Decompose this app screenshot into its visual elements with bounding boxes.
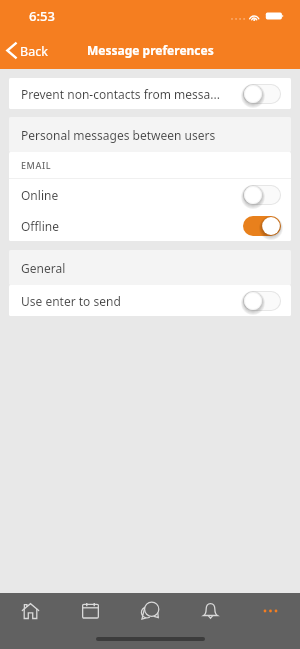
staticText: Online xyxy=(21,187,243,203)
button[interactable]: Online xyxy=(9,179,291,210)
button[interactable]: Home xyxy=(0,593,60,628)
button[interactable]: Use enter to send xyxy=(9,285,291,316)
button[interactable] xyxy=(243,216,281,236)
staticText: Offline xyxy=(21,218,243,234)
staticText: EMAIL xyxy=(21,159,52,171)
staticText: Personal messages between users xyxy=(21,127,216,143)
button[interactable] xyxy=(243,291,281,311)
staticText: Message preferences xyxy=(87,42,214,58)
button[interactable]: Notifications xyxy=(180,593,240,628)
button[interactable] xyxy=(243,84,281,104)
button[interactable]: Messages xyxy=(120,593,180,628)
button[interactable] xyxy=(243,185,281,205)
button[interactable]: Prevent non-contacts from messa... xyxy=(9,78,291,109)
button[interactable]: More options xyxy=(240,593,300,628)
staticText: Prevent non-contacts from messa... xyxy=(21,86,243,102)
staticText: Use enter to send xyxy=(21,293,243,309)
button[interactable]: Calendar xyxy=(60,593,120,628)
staticText: 6:53 xyxy=(29,7,55,25)
staticText: General xyxy=(21,260,66,276)
staticText: Back xyxy=(20,43,48,60)
button[interactable]: Back xyxy=(0,30,56,69)
button[interactable]: Offline xyxy=(9,210,291,241)
